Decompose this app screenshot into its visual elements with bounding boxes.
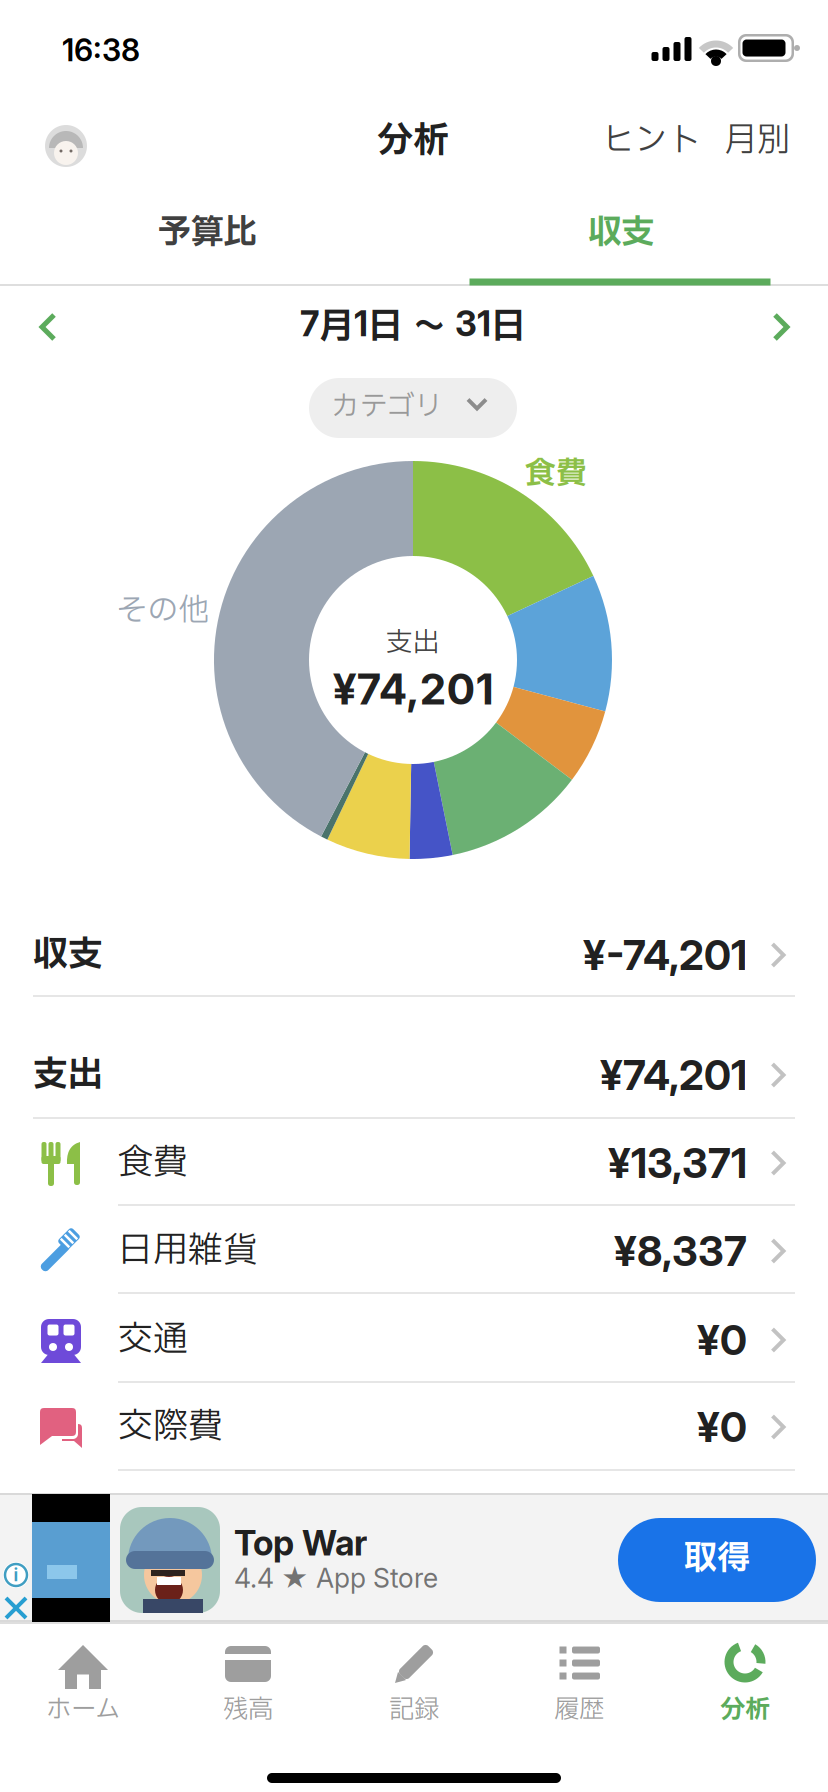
staticText: Top War	[234, 1523, 367, 1563]
staticText: ¥74,201	[332, 664, 493, 714]
staticText: ¥0	[697, 1403, 747, 1451]
staticText: ホーム	[46, 1691, 120, 1728]
staticText: ¥8,337	[614, 1227, 747, 1275]
staticText: 7月1日 〜 31日	[300, 302, 526, 352]
staticText: 16:38	[62, 32, 140, 68]
staticText: ¥0	[697, 1316, 747, 1364]
staticText: 予算比	[157, 209, 256, 257]
staticText: 履歴	[554, 1691, 604, 1728]
staticText: ヒント	[601, 117, 700, 165]
staticText: 食費	[118, 1138, 188, 1188]
staticText: 記録	[389, 1691, 439, 1728]
staticText: ¥13,371	[608, 1139, 747, 1187]
staticText: 月別	[724, 117, 790, 165]
staticText: 交通	[118, 1315, 188, 1365]
staticText: ¥74,201	[600, 1051, 747, 1099]
staticText: 支出	[33, 1050, 103, 1100]
staticText: その他	[116, 589, 209, 633]
staticText: 分析	[720, 1691, 770, 1728]
staticText: 4.4 ★ App Store	[234, 1562, 438, 1594]
staticText: カテゴリ	[331, 386, 442, 427]
staticText: 残高	[223, 1691, 273, 1728]
staticText: 取得	[684, 1535, 750, 1583]
staticText: ¥-74,201	[583, 931, 747, 979]
staticText: 収支	[33, 930, 103, 980]
staticText: 交際費	[118, 1402, 223, 1452]
staticText: 分析	[377, 115, 449, 167]
staticText: i	[13, 1565, 18, 1585]
staticText: 支出	[386, 623, 440, 662]
staticText: 日用雑貨	[118, 1226, 258, 1276]
staticText: 食費	[525, 452, 587, 496]
staticText: 収支	[588, 209, 654, 257]
